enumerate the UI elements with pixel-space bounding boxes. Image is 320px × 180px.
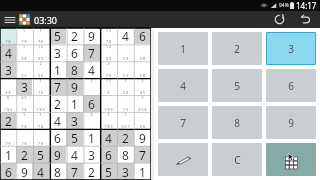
button[interactable]: 8 xyxy=(66,61,83,78)
button[interactable]: Pencil notes xyxy=(158,143,208,176)
button[interactable]: 3 xyxy=(16,78,32,95)
button[interactable]: Select cell xyxy=(266,143,316,176)
button[interactable]: 7 xyxy=(66,163,83,180)
button[interactable]: 7 8 xyxy=(16,129,32,146)
staticText: 3 xyxy=(5,62,12,78)
button[interactable]: 7 xyxy=(83,44,100,61)
button[interactable]: 8 xyxy=(49,163,66,180)
button[interactable]: 7 8 9 xyxy=(100,95,117,112)
button[interactable]: 1 3 xyxy=(100,28,117,44)
button[interactable]: 1 xyxy=(158,32,208,65)
button[interactable]: 2 xyxy=(32,61,49,78)
button[interactable]: Restart xyxy=(268,11,290,28)
button[interactable]: 7 xyxy=(49,78,66,95)
button[interactable]: 5 xyxy=(32,146,49,163)
button[interactable]: 2 xyxy=(16,146,32,163)
button[interactable]: 9 xyxy=(83,28,100,44)
button[interactable]: 7 xyxy=(158,106,208,139)
button[interactable]: 3 xyxy=(0,61,16,78)
button[interactable]: 4 xyxy=(32,163,49,180)
button[interactable]: 2 xyxy=(100,61,117,78)
button[interactable]: 2 xyxy=(117,129,134,146)
button[interactable]: 1 xyxy=(134,163,151,180)
button[interactable]: 6 xyxy=(266,69,316,102)
button[interactable]: 3 xyxy=(66,112,83,129)
button[interactable]: Menu xyxy=(3,12,17,27)
button[interactable]: 4 xyxy=(0,44,16,61)
button[interactable]: 1 xyxy=(49,61,66,78)
button[interactable]: 3 xyxy=(83,78,100,95)
button[interactable]: 1 2 xyxy=(100,78,117,95)
button[interactable]: 6 xyxy=(49,129,66,146)
button[interactable]: 1 xyxy=(16,44,32,61)
button[interactable]: 2 xyxy=(0,112,16,129)
button[interactable]: 6 xyxy=(0,163,16,180)
button[interactable]: 9 xyxy=(16,163,32,180)
button[interactable]: 8 xyxy=(212,106,262,139)
button[interactable]: 4 xyxy=(83,61,100,78)
button[interactable]: 1 xyxy=(66,95,83,112)
button[interactable]: 1 xyxy=(100,112,117,129)
button[interactable]: 1 xyxy=(83,129,100,146)
button[interactable]: 3 xyxy=(266,32,316,65)
button[interactable]: 4 5 xyxy=(16,95,32,112)
button[interactable]: 7 xyxy=(134,146,151,163)
button[interactable]: 5 8 xyxy=(134,112,151,129)
staticText xyxy=(33,95,48,100)
button[interactable]: 7 8 xyxy=(0,28,16,44)
button[interactable]: 2 xyxy=(134,78,151,95)
button[interactable]: 1 2 xyxy=(100,44,117,61)
button[interactable]: 5 8 xyxy=(134,44,151,61)
button[interactable]: 1 xyxy=(117,112,134,129)
button[interactable]: 7 9 xyxy=(117,95,134,112)
button[interactable]: 2 xyxy=(212,32,262,65)
button[interactable]: 4 xyxy=(66,146,83,163)
button[interactable]: 3 xyxy=(49,44,66,61)
button[interactable]: 3 xyxy=(117,163,134,180)
button[interactable]: 3 xyxy=(83,146,100,163)
button[interactable]: 1 xyxy=(16,28,32,44)
button[interactable]: 5 9 xyxy=(117,61,134,78)
button[interactable]: 4 xyxy=(100,129,117,146)
button[interactable]: Undo xyxy=(294,11,316,28)
button[interactable]: 3 xyxy=(134,95,151,112)
button[interactable]: 1 xyxy=(32,112,49,129)
button[interactable]: 5 9 xyxy=(117,44,134,61)
button[interactable]: 4 xyxy=(49,112,66,129)
button[interactable]: 2 xyxy=(66,28,83,44)
button[interactable]: 3 xyxy=(83,112,100,129)
button[interactable]: 9 xyxy=(49,146,66,163)
button[interactable]: 5 6 xyxy=(16,61,32,78)
button[interactable]: 4 xyxy=(117,28,134,44)
button[interactable]: 1 xyxy=(16,112,32,129)
button[interactable]: 2 xyxy=(83,163,100,180)
button[interactable]: 7 8 9 xyxy=(32,95,49,112)
button[interactable]: 5 xyxy=(0,95,16,112)
button[interactable]: 8 xyxy=(117,146,134,163)
button[interactable]: 7 8 xyxy=(0,129,16,146)
button[interactable]: 1 xyxy=(32,78,49,95)
button[interactable]: 6 xyxy=(66,44,83,61)
button[interactable]: 1 xyxy=(0,146,16,163)
button[interactable]: 9 xyxy=(266,106,316,139)
button[interactable]: 7 8 xyxy=(32,129,49,146)
button[interactable]: 6 xyxy=(100,146,117,163)
button[interactable]: 5 xyxy=(49,28,66,44)
staticText: 4 xyxy=(54,113,61,129)
button[interactable]: 6 xyxy=(134,28,151,44)
button[interactable]: C xyxy=(212,143,262,176)
button[interactable]: 2 xyxy=(49,95,66,112)
button[interactable]: 5 xyxy=(100,163,117,180)
button[interactable]: 1 xyxy=(32,28,49,44)
button[interactable]: 6 xyxy=(83,95,100,112)
button[interactable]: 1 2 xyxy=(32,44,49,61)
button[interactable]: 9 xyxy=(134,129,151,146)
button[interactable]: 5 8 xyxy=(134,61,151,78)
button[interactable]: 5 xyxy=(212,69,262,102)
button[interactable]: 4 xyxy=(158,69,208,102)
button[interactable]: 5 8 xyxy=(0,78,16,95)
staticText: 5 8 xyxy=(135,124,150,129)
button[interactable]: 5 xyxy=(66,129,83,146)
button[interactable]: 1 xyxy=(117,78,134,95)
button[interactable]: 9 xyxy=(66,78,83,95)
